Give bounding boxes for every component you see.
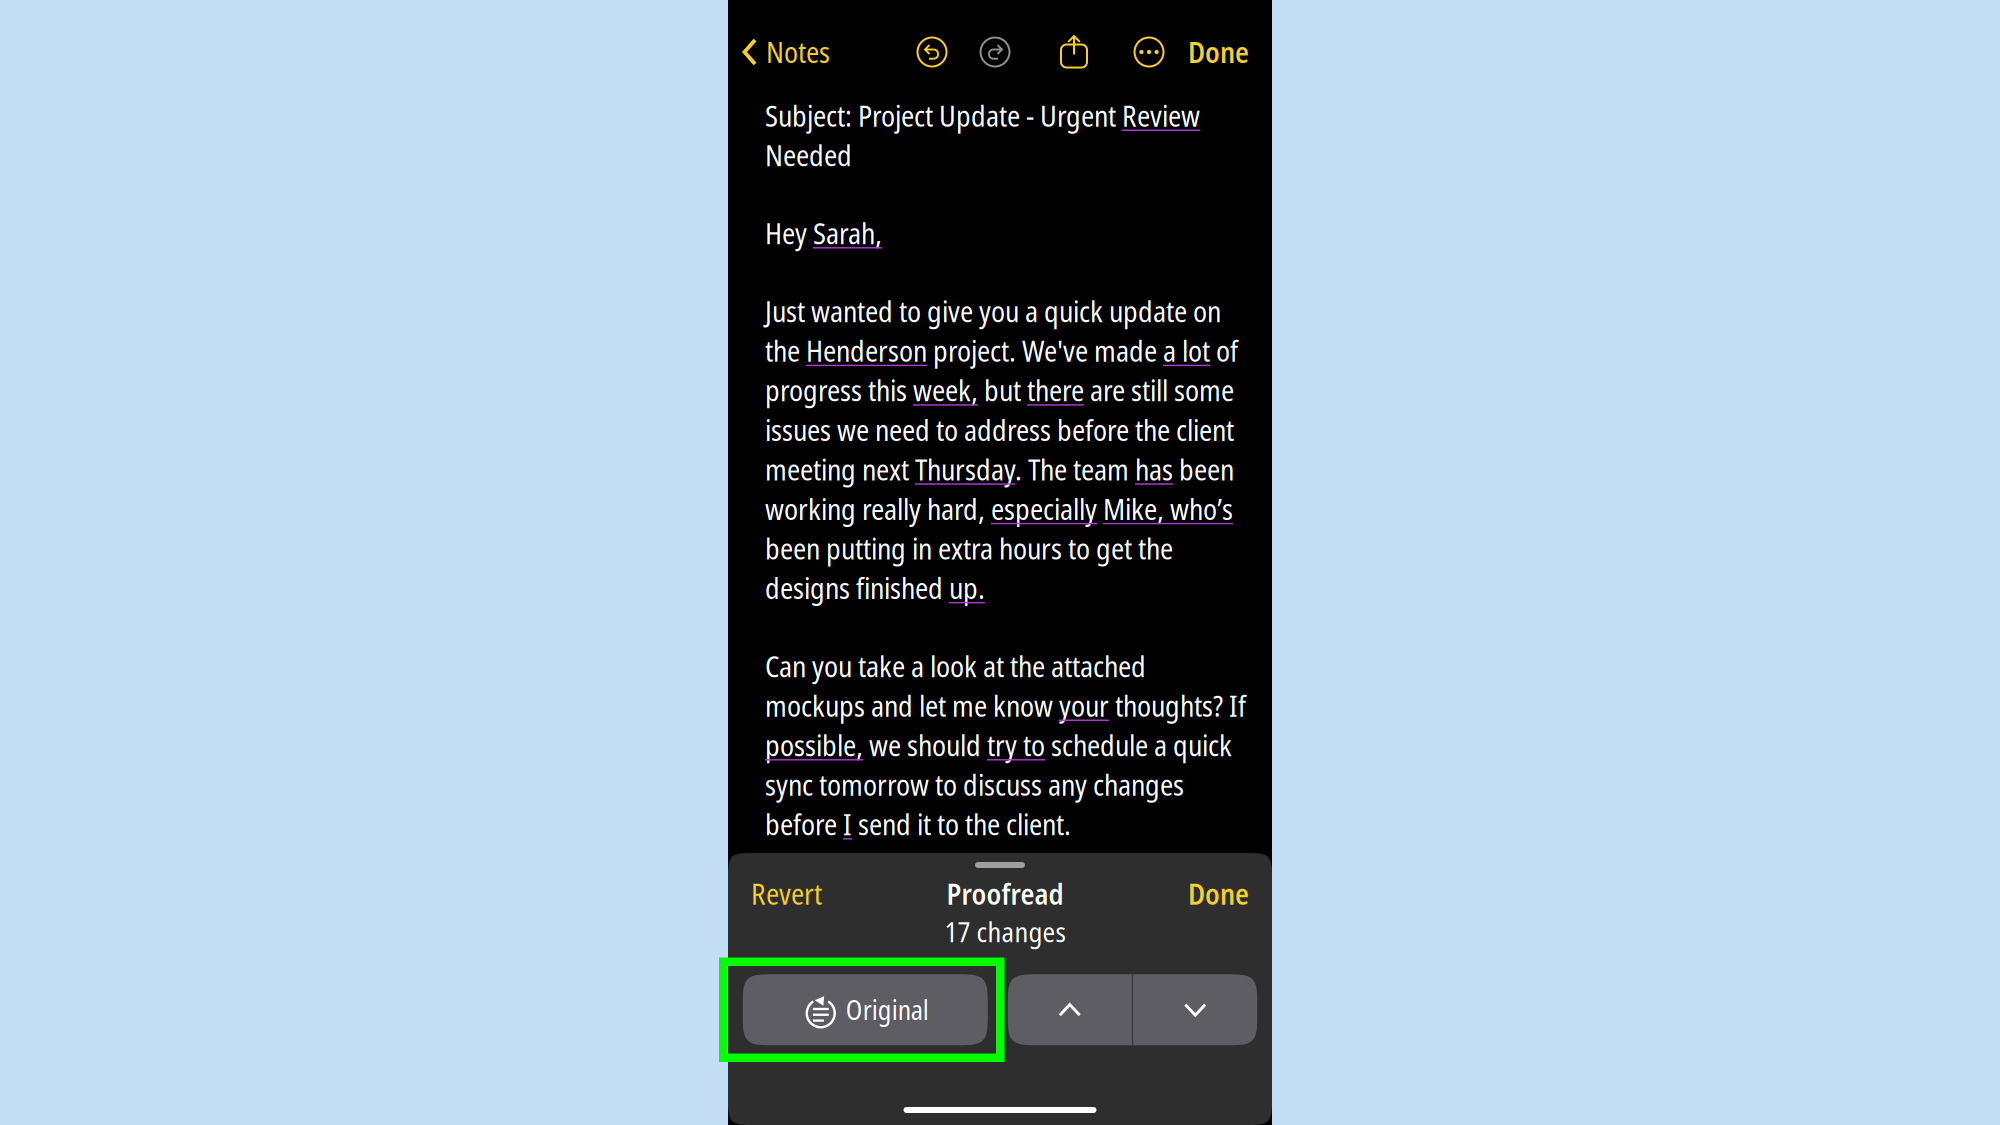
button[interactable]: Previous change bbox=[1008, 974, 1132, 1045]
staticText: Just wanted to give you a quick update o… bbox=[765, 292, 1238, 607]
staticText: Notes bbox=[766, 32, 830, 71]
button[interactable]: Redo bbox=[970, 27, 1020, 77]
button[interactable]: Share bbox=[1049, 27, 1099, 77]
staticText: Done bbox=[1188, 874, 1249, 913]
staticText: Hey Sarah, bbox=[765, 214, 882, 253]
staticText: Subject: Project Update - Urgent Review … bbox=[765, 96, 1200, 175]
button[interactable]: Done bbox=[1178, 868, 1259, 919]
staticText: Revert bbox=[751, 874, 822, 913]
staticText: Done bbox=[1188, 32, 1249, 71]
button[interactable]: Done bbox=[1188, 21, 1272, 82]
button[interactable]: Original bbox=[743, 974, 988, 1045]
staticText: Proofread bbox=[946, 874, 1063, 913]
button[interactable]: Revert bbox=[741, 868, 832, 919]
button[interactable]: Undo bbox=[907, 27, 957, 77]
button[interactable]: Notes bbox=[728, 21, 830, 82]
staticText: 17 changes bbox=[944, 913, 1065, 950]
button[interactable]: Next change bbox=[1133, 974, 1257, 1045]
staticText: Original bbox=[846, 992, 929, 1028]
staticText: Can you take a look at the attached mock… bbox=[765, 646, 1246, 844]
button[interactable]: More bbox=[1124, 27, 1174, 77]
